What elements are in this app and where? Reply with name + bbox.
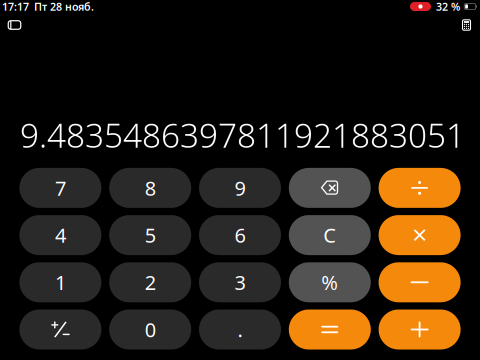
button[interactable]: 7 [19, 168, 101, 208]
button[interactable]: 3 [199, 262, 281, 302]
button[interactable]: Plus Minus [19, 309, 101, 349]
staticText: 17:17 [2, 0, 29, 14]
staticText: 0 [145, 316, 156, 343]
staticText: 8 [145, 175, 156, 201]
staticText: 1 [55, 269, 66, 296]
button[interactable]: % [289, 262, 371, 302]
staticText: 32 % [436, 0, 460, 14]
button[interactable]: 8 [109, 168, 191, 208]
button[interactable]: 0 [109, 309, 191, 349]
staticText: 5 [145, 222, 156, 248]
button[interactable]: C [289, 215, 371, 255]
staticText: Пт 28 нояб. [34, 0, 94, 14]
button[interactable]: Calculator [456, 13, 477, 36]
button[interactable]: Subtract [379, 262, 461, 302]
staticText: C [323, 222, 336, 248]
button[interactable]: Equals [289, 309, 371, 349]
button[interactable]: 9 [199, 168, 281, 208]
staticText: 9.483548639781192188305197 [20, 113, 480, 157]
staticText: 2 [145, 269, 156, 296]
button[interactable]: 2 [109, 262, 191, 302]
button[interactable]: . [199, 309, 281, 349]
staticText: 7 [55, 175, 66, 201]
button[interactable]: 6 [199, 215, 281, 255]
button[interactable]: Divide [379, 168, 461, 208]
button[interactable]: Show Sidebar [2, 14, 27, 35]
button[interactable]: Multiply [379, 215, 461, 255]
button[interactable]: 1 [19, 262, 101, 302]
button[interactable]: Delete [289, 168, 371, 208]
staticText: 3 [234, 269, 245, 296]
button[interactable]: Add [379, 309, 461, 349]
staticText: % [321, 269, 338, 296]
staticText: 4 [55, 222, 66, 248]
staticText: 9 [234, 175, 245, 201]
staticText: . [237, 316, 242, 343]
staticText: 6 [234, 222, 245, 248]
button[interactable]: 4 [19, 215, 101, 255]
button[interactable]: 5 [109, 215, 191, 255]
